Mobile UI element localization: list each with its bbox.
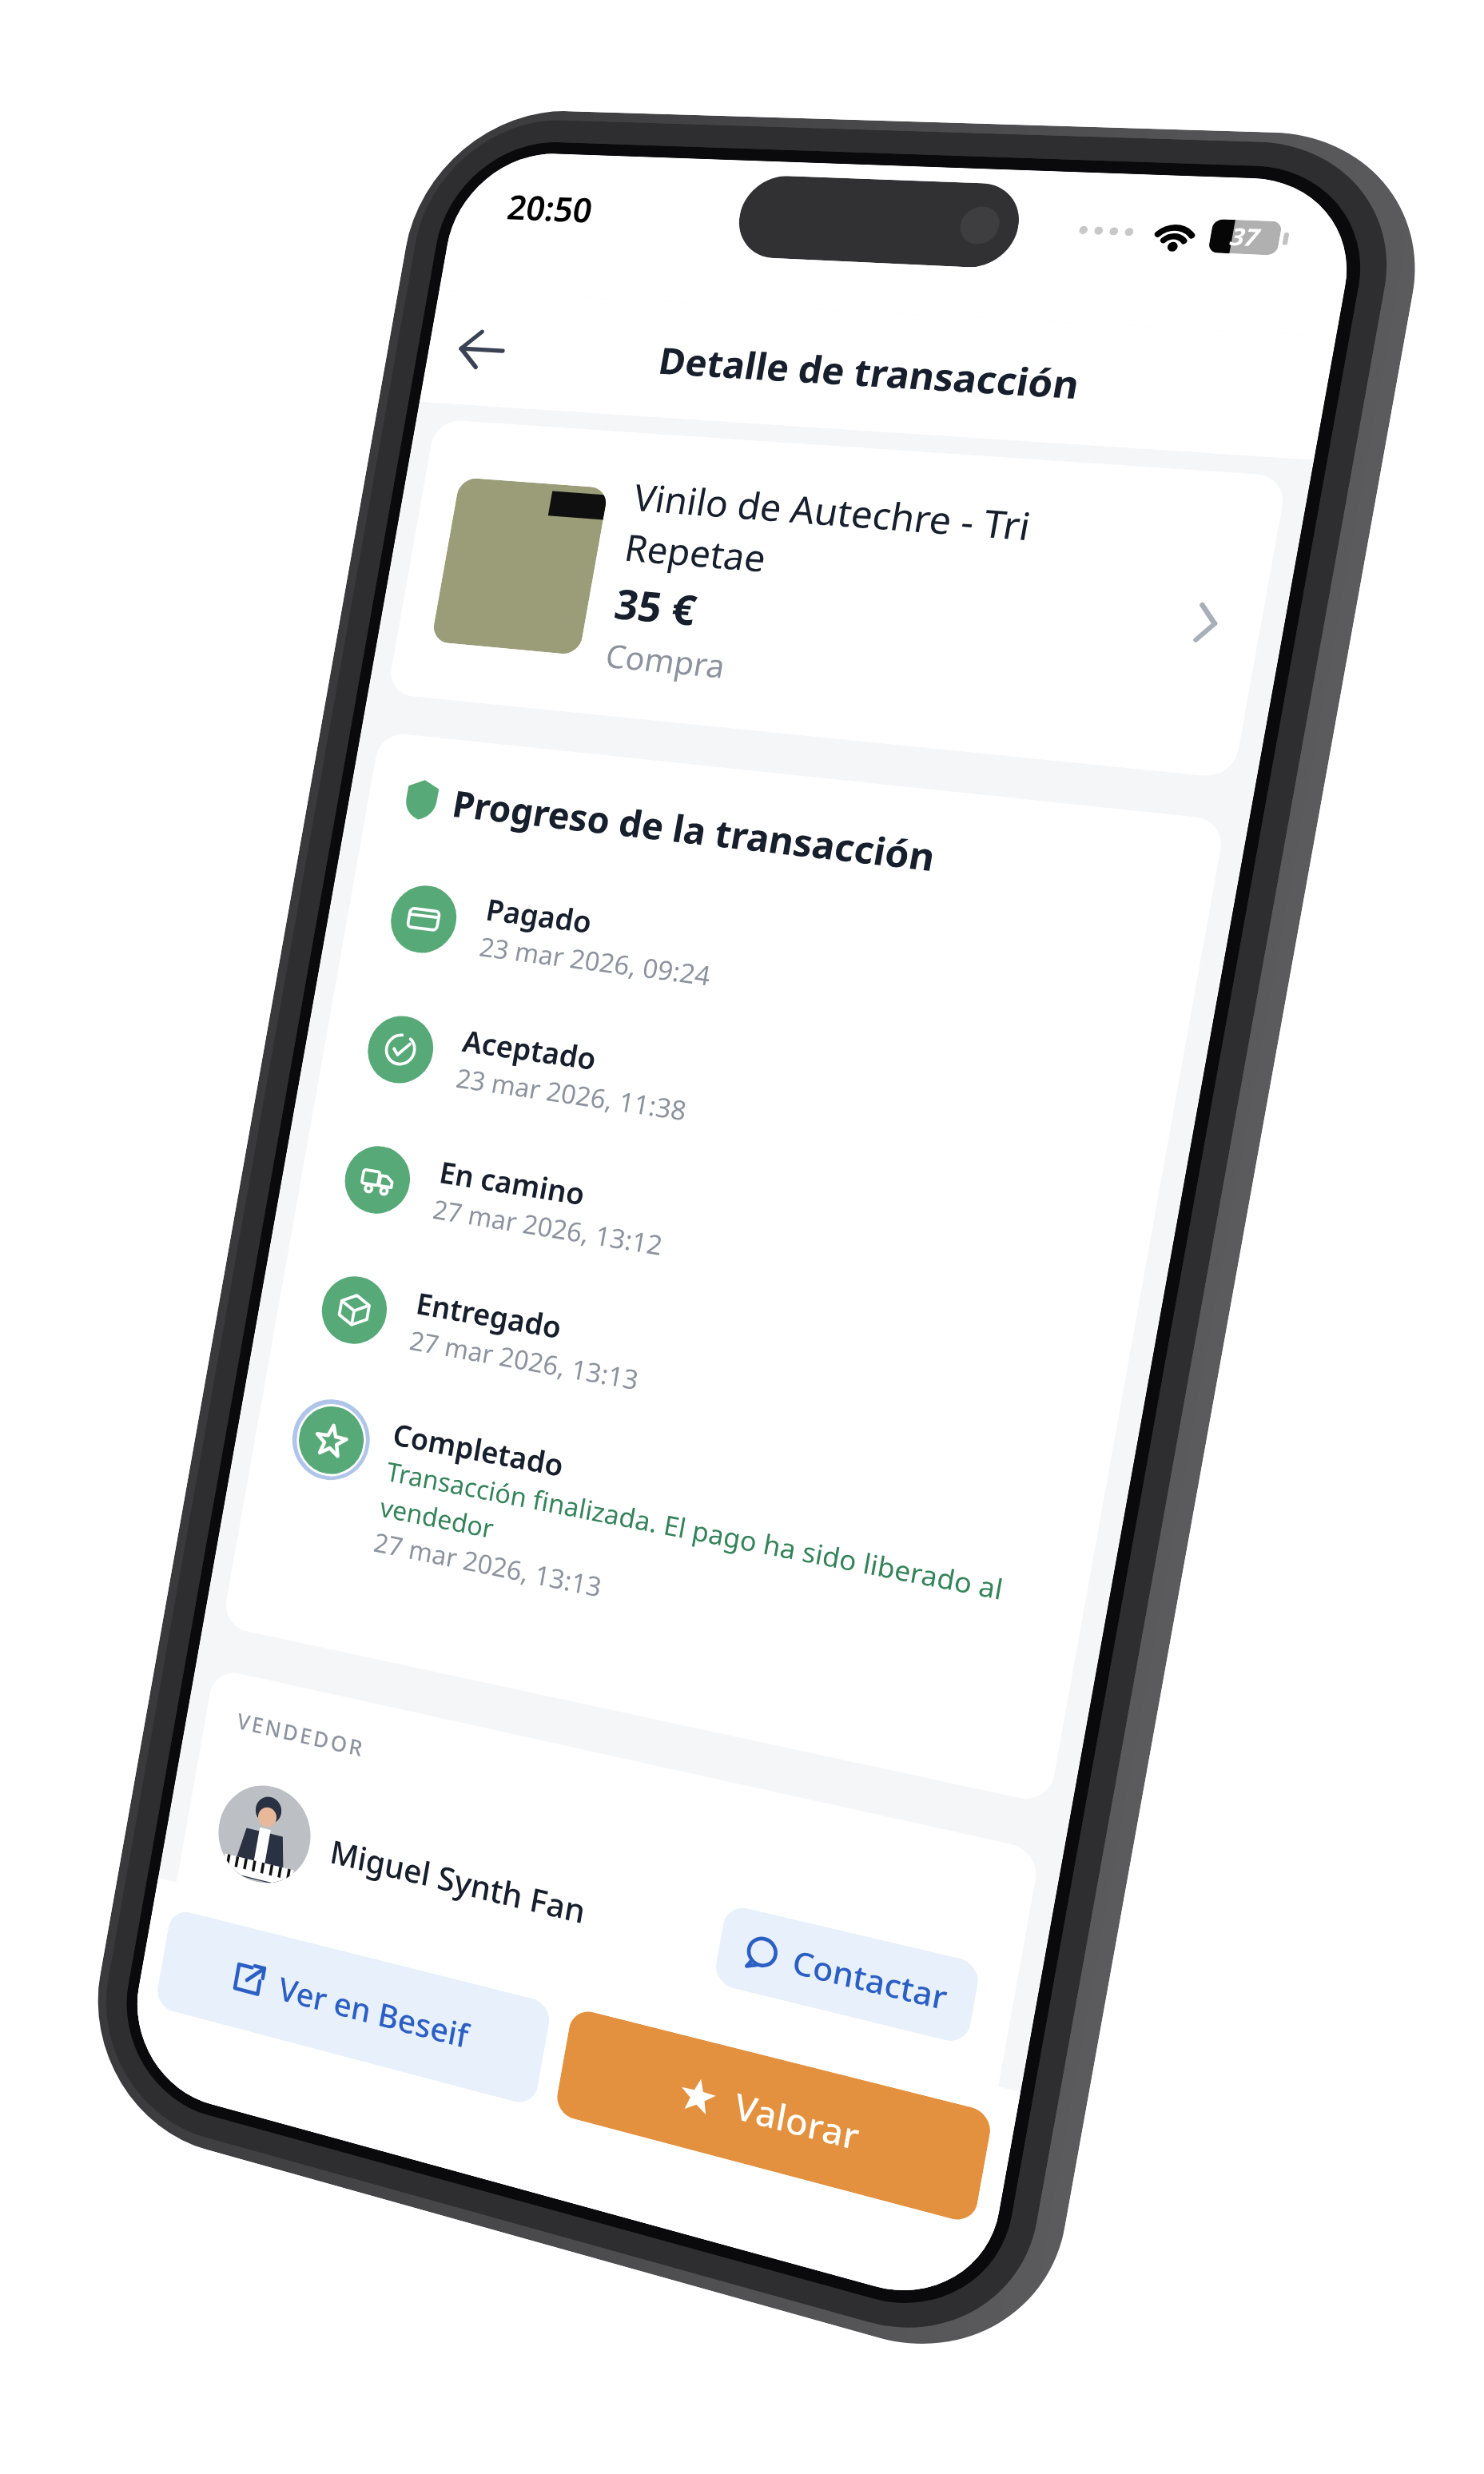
staticText: 27 mar 2026, 13:12 (430, 1191, 666, 1263)
staticText: Miguel Synth Fan (324, 1829, 592, 1933)
button[interactable]: Contactar (709, 1903, 985, 2046)
staticText: Completado (389, 1413, 568, 1486)
staticText: 23 mar 2026, 09:24 (477, 923, 714, 999)
staticText: 37 (1228, 216, 1262, 257)
button[interactable]: Back (438, 302, 525, 396)
staticText: Detalle de transacción (655, 295, 1084, 447)
staticText: Progreso de la transacción (449, 758, 940, 900)
staticText: 35 € (611, 570, 701, 643)
staticText: 23 mar 2026, 11:38 (454, 1057, 690, 1130)
button[interactable]: Vinilo de Autechre - Tri Repetae (387, 347, 1288, 823)
staticText: Compra (602, 626, 729, 694)
staticText: Aceptado (460, 1018, 600, 1080)
staticText: 27 mar 2026, 13:13 (406, 1322, 643, 1398)
staticText: Vinilo de Autechre - Tri Repetae (621, 429, 1181, 652)
button[interactable]: Ver en Beseif (148, 1908, 558, 2107)
staticText: Pagado (483, 885, 596, 944)
staticText: Valorar (729, 2081, 866, 2161)
staticText: Entregado (413, 1282, 566, 1347)
staticText: Contactar (787, 1939, 953, 2020)
staticText: Ver en Beseif (273, 1966, 475, 2058)
staticText: 20:50 (504, 174, 597, 242)
staticText: Transacción finalizada. El pago ha sido … (373, 1453, 1049, 1655)
staticText: VENDEDOR (234, 1706, 369, 1763)
button[interactable]: Valorar (547, 2007, 1000, 2225)
staticText: En camino (436, 1151, 588, 1214)
staticText: 27 mar 2026, 13:13 (370, 1524, 607, 1605)
